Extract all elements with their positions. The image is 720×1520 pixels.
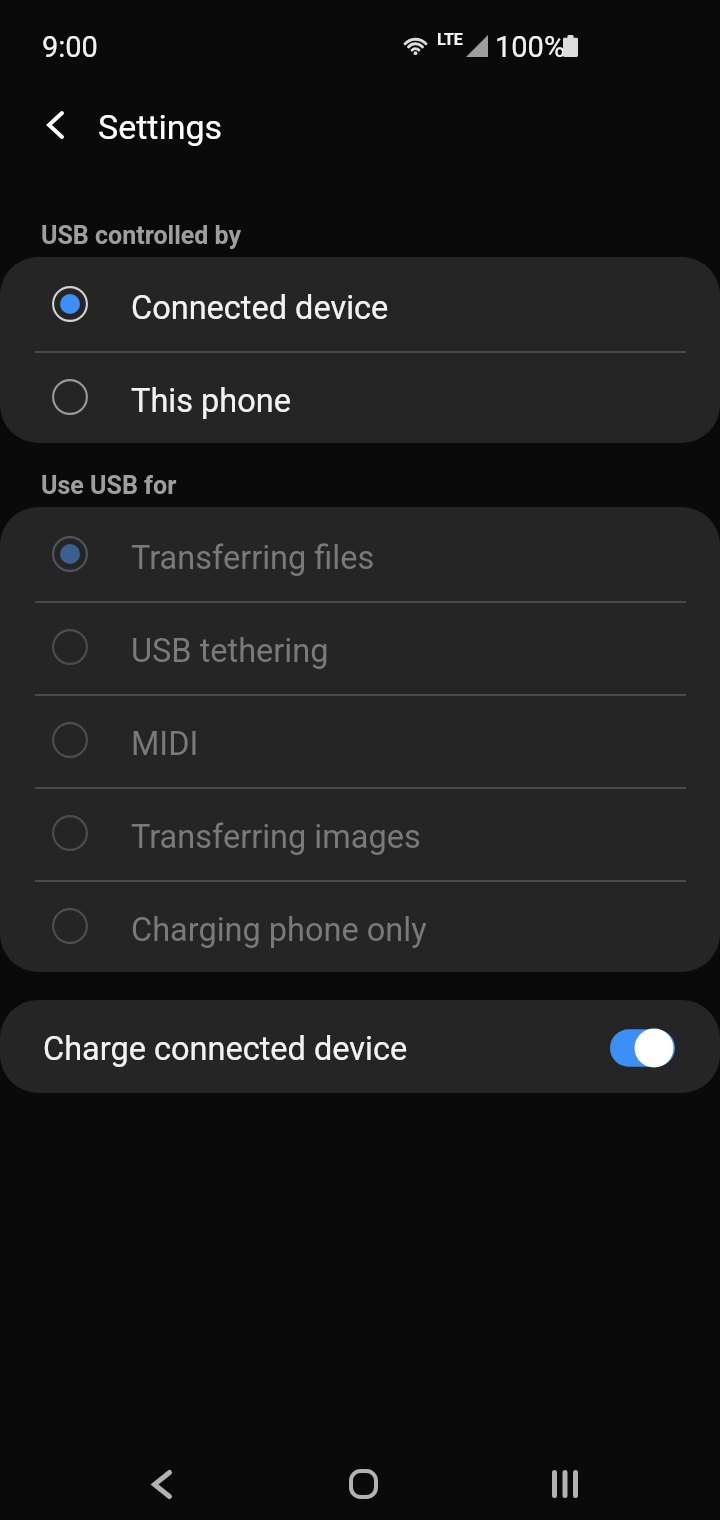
button[interactable]: USB tethering (0, 600, 720, 693)
staticText: MIDI (131, 725, 199, 763)
staticText: 100% (495, 30, 566, 64)
button[interactable]: This phone (0, 350, 720, 443)
staticText: LTE (437, 30, 463, 49)
staticText: Transferring images (131, 818, 421, 856)
staticText: Use USB for (41, 471, 177, 500)
staticText: USB controlled by (41, 221, 242, 250)
button[interactable]: Back (122, 1444, 202, 1520)
staticText: 9:00 (42, 30, 98, 64)
button[interactable]: MIDI (0, 693, 720, 786)
staticText: Transferring files (131, 539, 375, 577)
staticText: Charging phone only (131, 911, 427, 949)
staticText: Connected device (131, 289, 389, 327)
button[interactable]: Charge connected device (0, 1000, 720, 1093)
button[interactable]: Connected device (0, 257, 720, 350)
staticText: Charge connected device (43, 1030, 408, 1068)
staticText: Settings (98, 107, 223, 147)
button[interactable]: Transferring images (0, 786, 720, 879)
button[interactable]: Recent apps (525, 1444, 605, 1520)
staticText: USB tethering (131, 632, 329, 670)
staticText: This phone (131, 382, 291, 420)
button[interactable]: Home (323, 1444, 403, 1520)
button[interactable]: Transferring files (0, 507, 720, 600)
button[interactable]: Navigate up (27, 97, 83, 153)
button[interactable]: Charging phone only (0, 879, 720, 972)
